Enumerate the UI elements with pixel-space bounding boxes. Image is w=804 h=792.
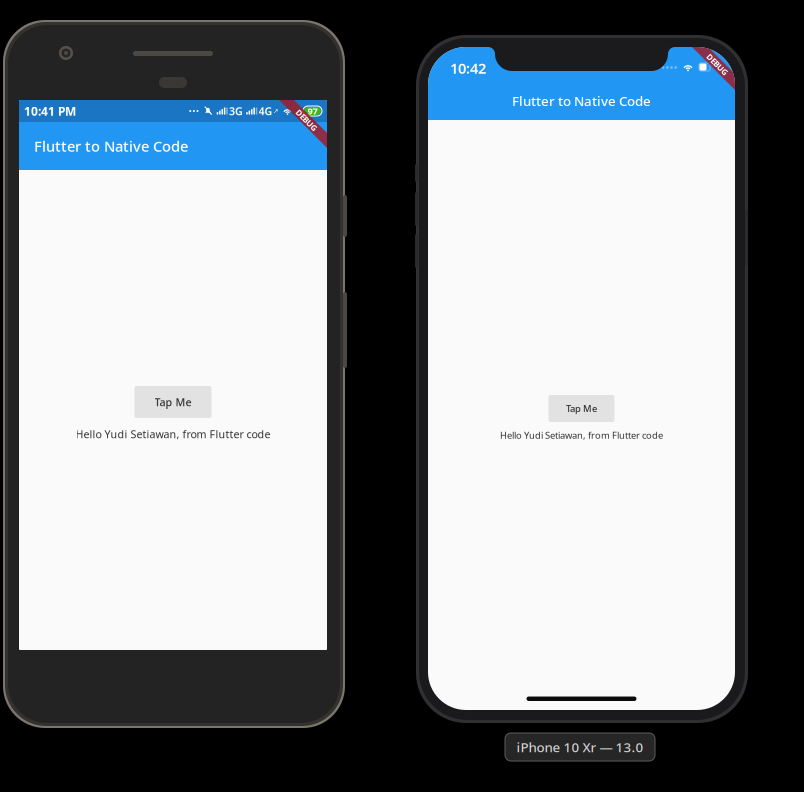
staticText: Hello Yudi Setiawan, from Flutter code xyxy=(75,427,270,441)
staticText: DEBUG xyxy=(704,59,731,70)
staticText: ↗ xyxy=(273,107,279,115)
staticText: Tap Me xyxy=(154,395,191,409)
staticText: Flutter to Native Code xyxy=(34,136,188,156)
button[interactable]: Tap Me xyxy=(548,395,614,422)
staticText: iPhone 10 Xr — 13.0 xyxy=(516,738,643,756)
staticText: 97 xyxy=(307,105,317,117)
staticText: 3G xyxy=(229,104,243,118)
staticText: 10:41 PM xyxy=(24,103,76,119)
staticText: Flutter to Native Code xyxy=(512,92,651,110)
staticText: Hello Yudi Setiawan, from Flutter code xyxy=(500,429,663,441)
staticText: 4G xyxy=(258,104,272,118)
staticText: 10:42 xyxy=(450,58,486,78)
staticText: DEBUG xyxy=(293,115,320,125)
button[interactable]: Tap Me xyxy=(134,386,211,418)
staticText: Tap Me xyxy=(566,402,597,415)
